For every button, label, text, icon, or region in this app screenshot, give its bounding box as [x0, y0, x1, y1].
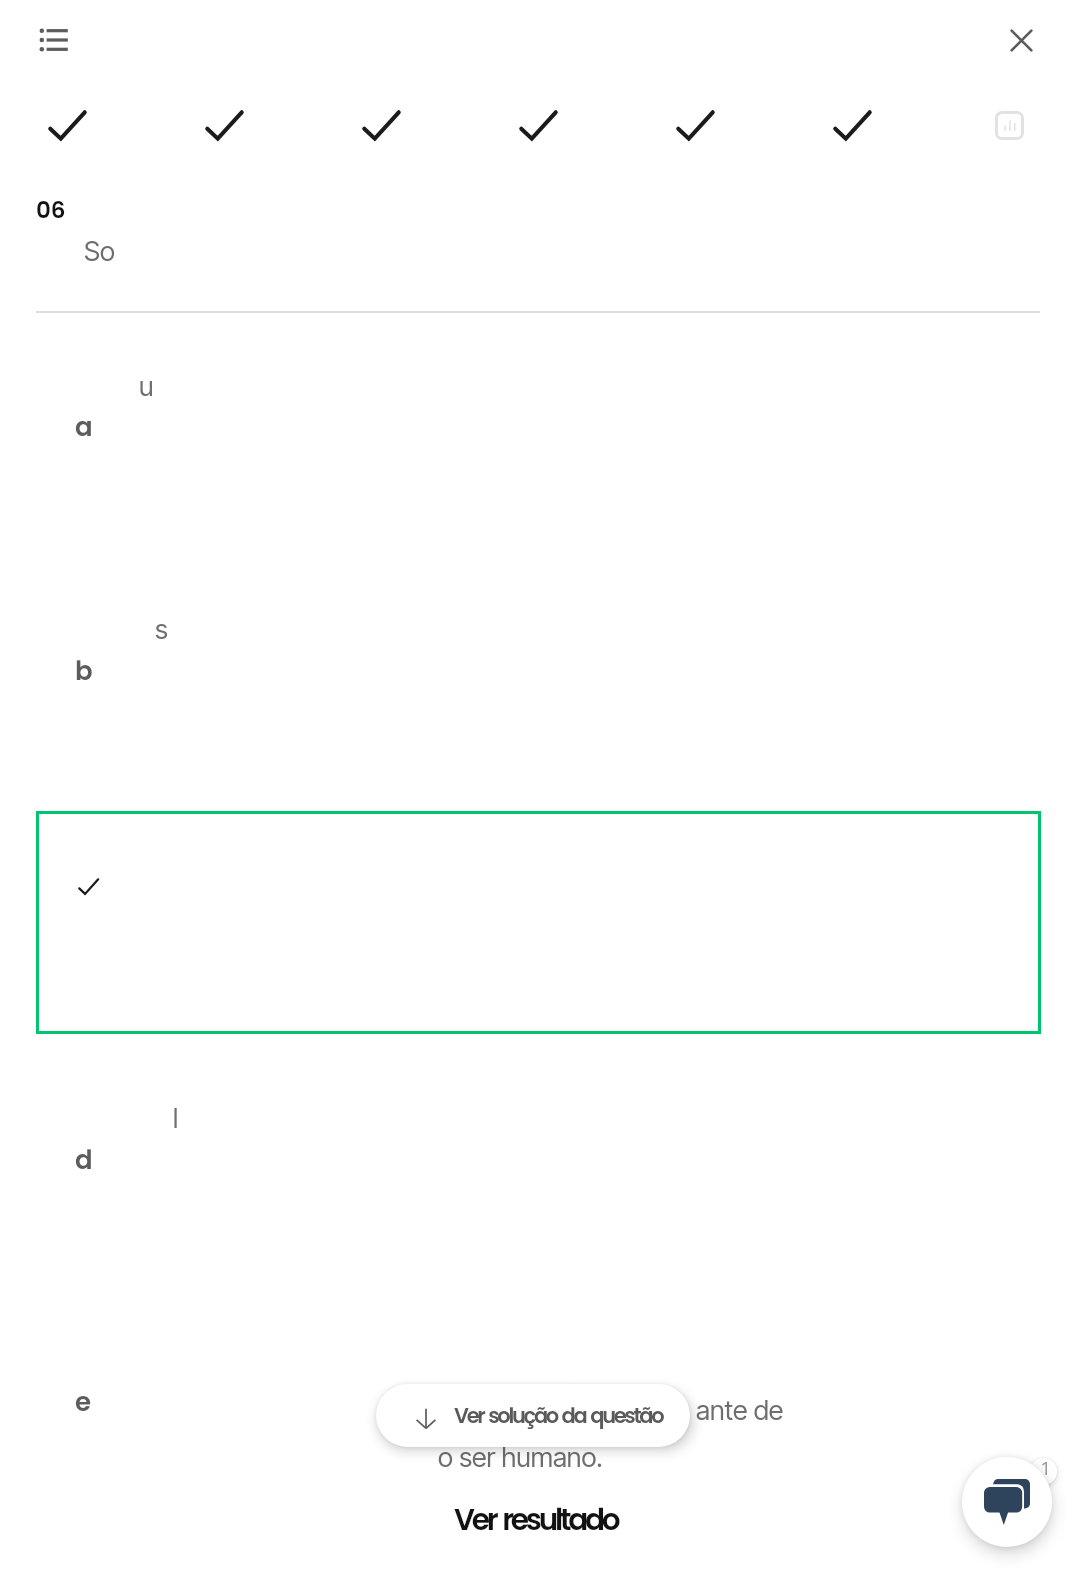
button[interactable] — [648, 92, 744, 164]
button[interactable]: Estatísticas — [975, 92, 1045, 160]
button[interactable] — [20, 92, 116, 164]
staticText: ante de — [696, 1394, 784, 1427]
button[interactable]: s — [0, 595, 1076, 795]
button[interactable]: Ver resultado — [454, 1499, 618, 1540]
button[interactable]: Abrir chat — [962, 1457, 1052, 1547]
button[interactable] — [805, 92, 901, 164]
staticText: b — [75, 653, 93, 689]
staticText: l — [173, 1102, 179, 1135]
button[interactable]: Lista de questões — [16, 8, 92, 72]
button[interactable]: Fechar — [988, 8, 1060, 72]
staticText: d — [75, 1142, 93, 1178]
staticText: a — [75, 409, 93, 445]
staticText: Ver solução da questão — [454, 1401, 663, 1430]
staticText: s — [155, 613, 168, 646]
staticText: So — [84, 235, 115, 268]
staticText: u — [139, 370, 154, 403]
button[interactable]: e — [0, 1375, 1076, 1505]
staticText: 1 — [1042, 1459, 1049, 1480]
staticText: e — [75, 1384, 92, 1420]
button[interactable] — [177, 92, 273, 164]
staticText: o ser humano. — [438, 1441, 603, 1474]
staticText: 06 — [36, 194, 66, 226]
button[interactable]: u — [0, 350, 1076, 590]
button[interactable]: Ver solução da questão — [376, 1384, 690, 1447]
button[interactable] — [334, 92, 430, 164]
button[interactable]: l — [0, 1090, 1076, 1350]
button[interactable] — [491, 92, 587, 164]
button[interactable] — [36, 811, 1041, 1034]
